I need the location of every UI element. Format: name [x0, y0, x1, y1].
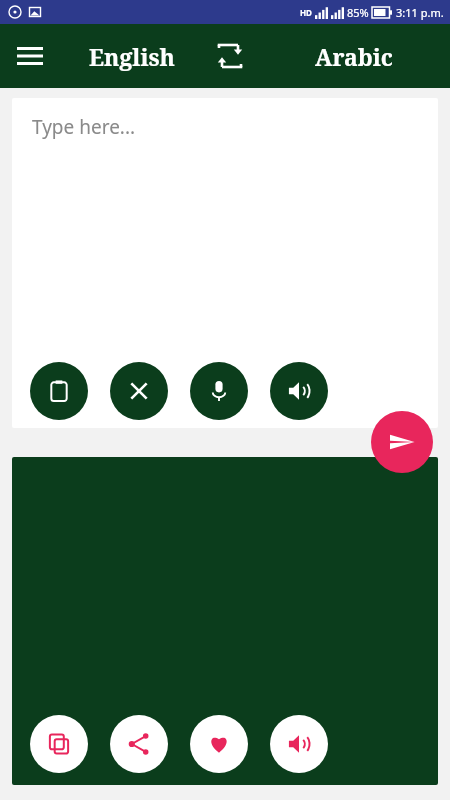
staticText: 3:11 p.m. — [396, 5, 444, 20]
button[interactable]: Speak translation — [270, 715, 328, 773]
staticText: Type here... — [32, 114, 136, 140]
button[interactable]: Share translation — [110, 715, 168, 773]
staticText: English — [89, 41, 175, 72]
button[interactable]: Open navigation menu — [8, 34, 52, 78]
staticText: Arabic — [315, 41, 393, 72]
button[interactable]: Speak source text — [270, 362, 328, 420]
button[interactable]: Paste from clipboard — [30, 362, 88, 420]
button[interactable]: Translate — [371, 411, 433, 473]
button[interactable]: English — [62, 32, 202, 80]
button[interactable]: Add to favourites — [190, 715, 248, 773]
button[interactable]: Copy translation — [30, 715, 88, 773]
button[interactable]: Clear text — [110, 362, 168, 420]
staticText: 85% — [347, 5, 369, 20]
button[interactable]: Swap languages — [202, 32, 258, 80]
staticText: HD — [300, 7, 312, 18]
button[interactable]: Arabic — [258, 32, 450, 80]
button[interactable]: Voice input — [190, 362, 248, 420]
